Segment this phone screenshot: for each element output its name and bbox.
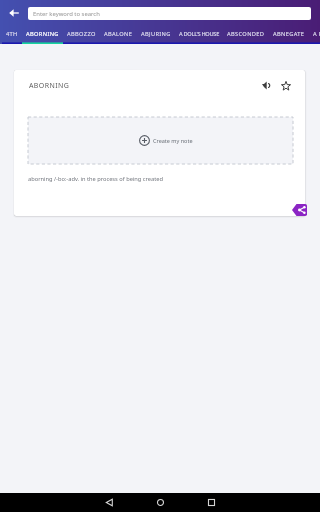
button[interactable]: Favorite <box>276 76 296 95</box>
button[interactable]: 4TH <box>2 26 22 44</box>
staticText: Create my note <box>153 137 193 144</box>
staticText: ABJURING <box>141 30 171 38</box>
staticText: ABBOZZO <box>67 30 96 38</box>
button[interactable]: ABSCONDED <box>223 26 269 44</box>
staticText: aborning /-bo:-adv. in the process of be… <box>28 175 163 183</box>
staticText: A PRIORI <box>313 30 320 38</box>
button[interactable]: Recents <box>186 493 237 512</box>
button[interactable]: ABALONE <box>100 26 137 44</box>
button[interactable]: ABJURING <box>137 26 175 44</box>
staticText: ABNEGATE <box>273 30 305 38</box>
button[interactable]: ABNEGATE <box>269 26 309 44</box>
staticText: 4TH <box>6 30 18 38</box>
button[interactable]: Share <box>292 204 307 216</box>
staticText: Enter keyword to search <box>33 10 100 18</box>
staticText: ABALONE <box>104 30 133 38</box>
staticText: ABORNING <box>26 30 59 38</box>
button[interactable]: ABBOZZO <box>63 26 100 44</box>
button[interactable]: A PRIORI <box>309 26 320 44</box>
button[interactable]: Back <box>84 493 135 512</box>
button[interactable]: Home <box>135 493 186 512</box>
staticText: ABORNING <box>29 81 70 91</box>
button[interactable]: Pronounce <box>256 76 276 95</box>
button[interactable]: Create my note <box>28 117 293 164</box>
staticText: ABSCONDED <box>227 30 265 38</box>
button[interactable]: Back <box>0 0 28 26</box>
button[interactable]: A DOLL'S HOUSE <box>175 26 223 44</box>
button[interactable]: ABORNING <box>22 26 63 44</box>
button[interactable]: Enter keyword to search <box>28 7 311 20</box>
staticText: A DOLL'S HOUSE <box>179 30 219 38</box>
